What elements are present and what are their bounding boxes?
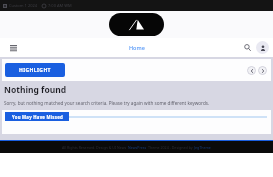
button[interactable]: You May Have Missed	[5, 112, 69, 121]
staticText: HIGHLIGHT	[19, 67, 51, 74]
button[interactable]: Search	[241, 41, 254, 54]
staticText: You May Have Missed	[12, 114, 63, 120]
staticText: JegTheme	[194, 145, 211, 150]
button[interactable]: Open navigation menu	[6, 41, 20, 55]
staticText: Theme 2024 - Designed by	[147, 145, 194, 150]
button[interactable]: Account	[256, 41, 269, 54]
button[interactable]: Previous	[247, 66, 256, 75]
staticText: NewsPress	[128, 145, 147, 150]
button[interactable]: HIGHLIGHT	[5, 63, 65, 77]
button[interactable]: Site logo, home	[109, 13, 164, 36]
staticText: Custom 1 2024	[9, 3, 38, 8]
staticText: Sorry, but nothing matched your search c…	[4, 100, 210, 106]
staticText: Home	[129, 44, 145, 51]
button[interactable]: Home	[126, 42, 148, 53]
staticText: 7:00 AM WM	[48, 3, 72, 8]
button[interactable]: Next	[258, 66, 267, 75]
staticText: All Rights Reserved. Design & UI News	[62, 145, 128, 150]
staticText: Nothing found	[4, 84, 67, 96]
